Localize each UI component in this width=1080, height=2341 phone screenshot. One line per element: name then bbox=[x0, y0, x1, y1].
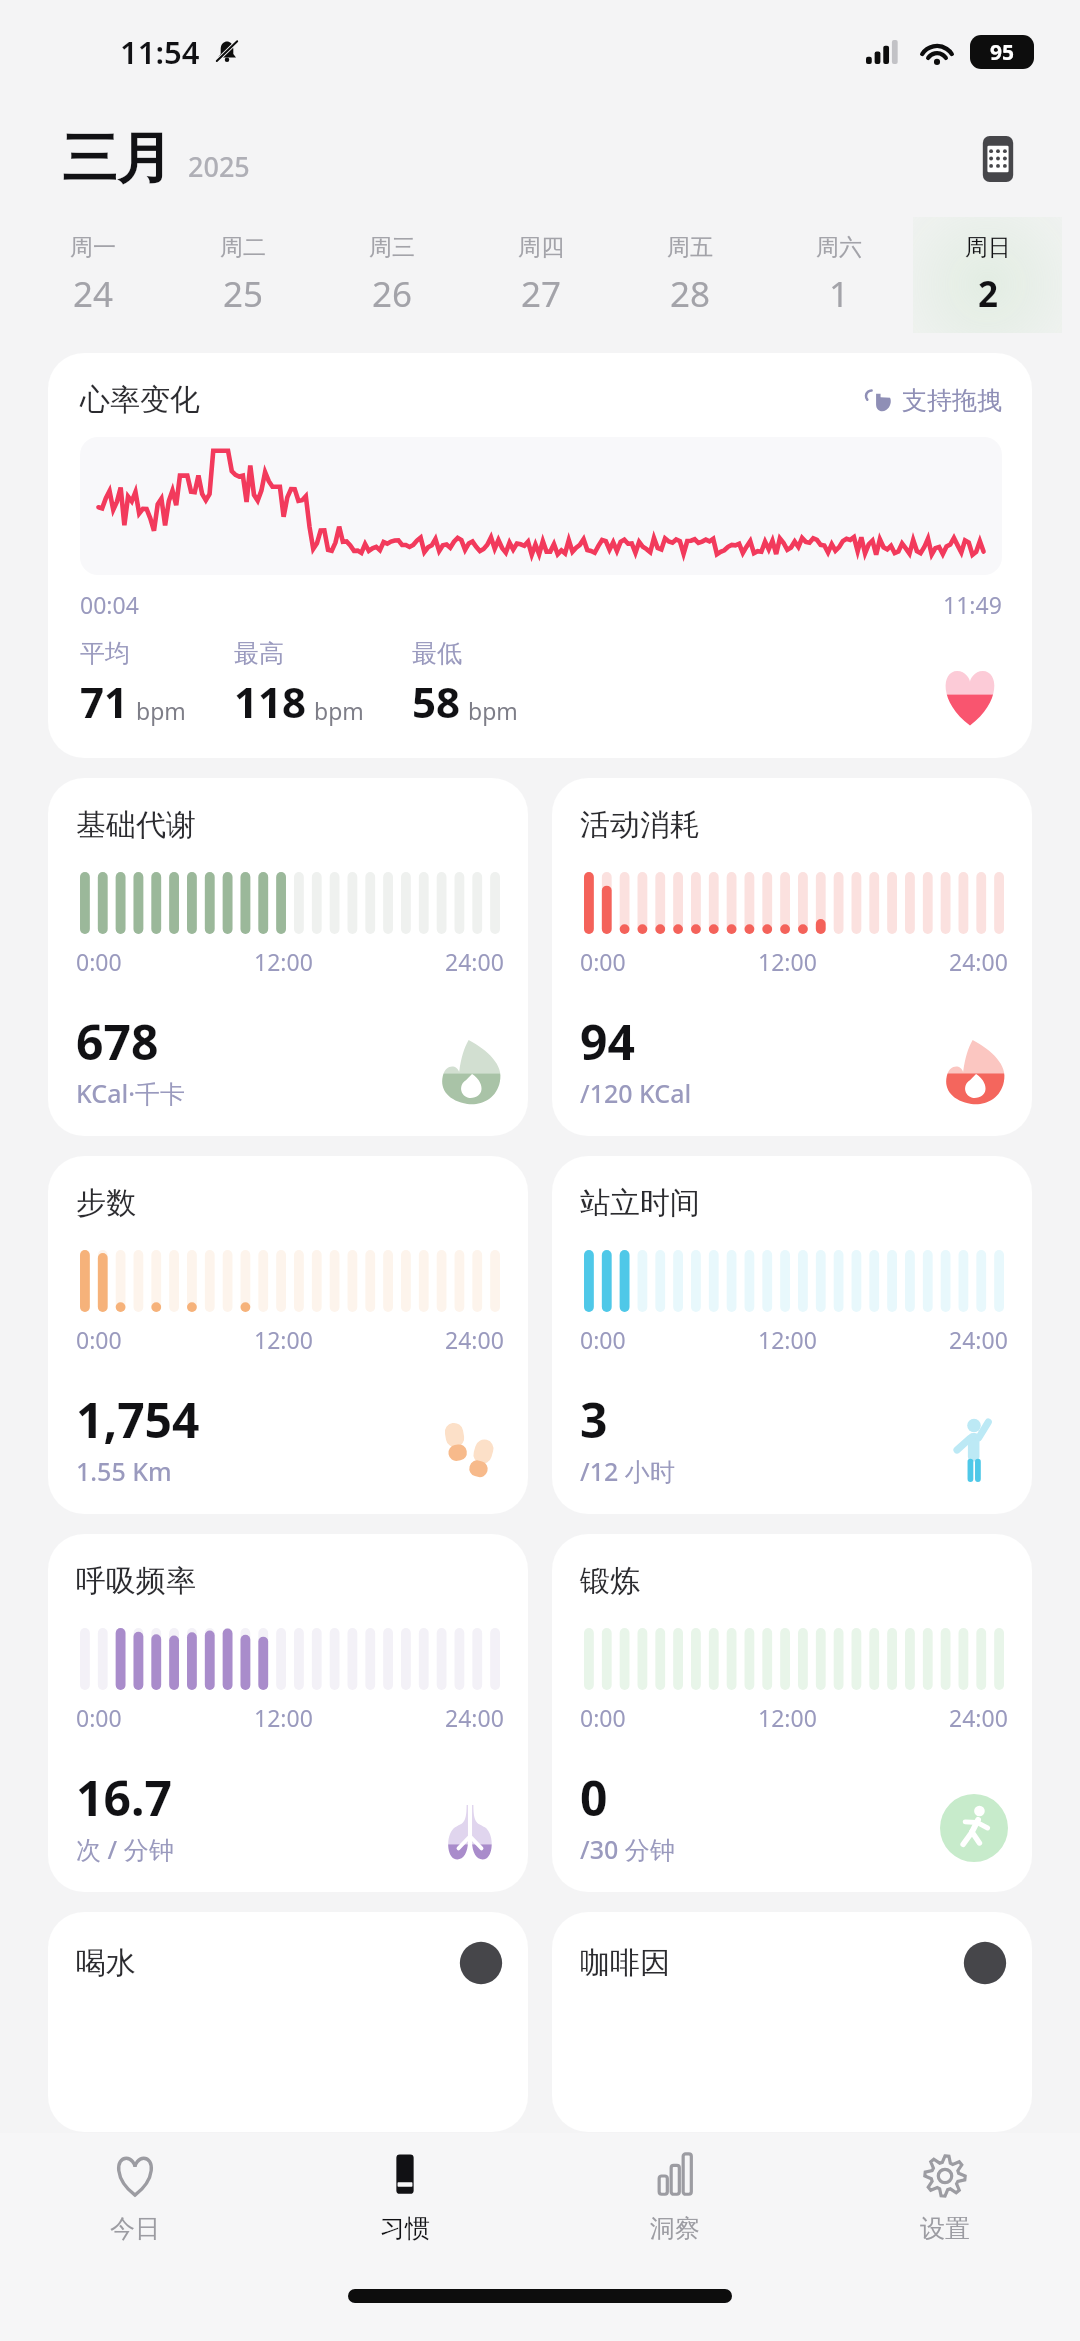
staticText: 12:00 bbox=[758, 946, 817, 977]
staticText: 1 bbox=[829, 270, 850, 318]
staticText: 12:00 bbox=[758, 1702, 817, 1733]
staticText: 周日 bbox=[965, 233, 1011, 262]
button[interactable]: 周六 bbox=[764, 217, 913, 333]
staticText: 11:54 bbox=[120, 31, 200, 73]
staticText: 平均 bbox=[80, 638, 130, 669]
button[interactable]: 喝水 bbox=[48, 1912, 528, 2132]
staticText: 12:00 bbox=[254, 1324, 313, 1355]
staticText: 24 bbox=[73, 270, 114, 318]
button[interactable]: 习惯 bbox=[270, 2149, 540, 2281]
staticText: 24:00 bbox=[445, 946, 504, 977]
staticText: 周二 bbox=[220, 233, 266, 262]
staticText: bpm bbox=[468, 695, 518, 726]
staticText: 0:00 bbox=[580, 1702, 626, 1733]
staticText: 58 bbox=[412, 673, 461, 730]
button[interactable]: 周三 bbox=[317, 217, 466, 333]
staticText: 0:00 bbox=[580, 946, 626, 977]
staticText: 1,754 bbox=[76, 1387, 200, 1452]
button[interactable]: 基础代谢 bbox=[48, 778, 528, 1136]
staticText: 周三 bbox=[369, 233, 415, 262]
staticText: 26 bbox=[372, 270, 413, 318]
staticText: 00:04 bbox=[80, 589, 139, 620]
staticText: 24:00 bbox=[949, 946, 1008, 977]
staticText: 12:00 bbox=[254, 1702, 313, 1733]
staticText: 0:00 bbox=[580, 1324, 626, 1355]
staticText: 三月 bbox=[62, 124, 172, 193]
staticText: 周一 bbox=[70, 233, 116, 262]
button[interactable]: 心率变化 bbox=[48, 353, 1032, 758]
staticText: 设置 bbox=[920, 2213, 970, 2244]
staticText: 站立时间 bbox=[580, 1184, 700, 1222]
button[interactable]: 锻炼 bbox=[552, 1534, 1032, 1892]
staticText: 2 bbox=[978, 270, 999, 318]
staticText: 周五 bbox=[667, 233, 713, 262]
staticText: 最低 bbox=[412, 638, 462, 669]
button[interactable]: 咖啡因 bbox=[552, 1912, 1032, 2132]
staticText: 24:00 bbox=[949, 1702, 1008, 1733]
staticText: 周四 bbox=[518, 233, 564, 262]
button[interactable]: 步数 bbox=[48, 1156, 528, 1514]
staticText: /12 小时 bbox=[580, 1454, 675, 1488]
staticText: /120 KCal bbox=[580, 1076, 692, 1110]
button[interactable]: 周日 bbox=[913, 217, 1062, 333]
staticText: 洞察 bbox=[650, 2213, 700, 2244]
staticText: 24:00 bbox=[445, 1702, 504, 1733]
staticText: 0:00 bbox=[76, 1702, 122, 1733]
staticText: bpm bbox=[314, 695, 364, 726]
staticText: 周六 bbox=[816, 233, 862, 262]
staticText: 27 bbox=[521, 270, 562, 318]
staticText: 3 bbox=[580, 1387, 608, 1452]
staticText: 1.55 Km bbox=[76, 1454, 172, 1488]
staticText: 0 bbox=[580, 1765, 608, 1830]
staticText: 今日 bbox=[110, 2213, 160, 2244]
button[interactable]: 站立时间 bbox=[552, 1156, 1032, 1514]
staticText: 24:00 bbox=[445, 1324, 504, 1355]
staticText: 24:00 bbox=[949, 1324, 1008, 1355]
staticText: 习惯 bbox=[380, 2213, 430, 2244]
staticText: 118 bbox=[234, 673, 307, 730]
button[interactable]: 周二 bbox=[168, 217, 317, 333]
staticText: 活动消耗 bbox=[580, 806, 700, 844]
staticText: 支持拖拽 bbox=[902, 385, 1002, 416]
button[interactable]: 洞察 bbox=[540, 2149, 810, 2281]
button[interactable]: 周四 bbox=[466, 217, 615, 333]
staticText: 基础代谢 bbox=[76, 806, 196, 844]
staticText: 12:00 bbox=[254, 946, 313, 977]
staticText: 94 bbox=[580, 1009, 635, 1074]
staticText: 步数 bbox=[76, 1184, 136, 1222]
staticText: KCal·千卡 bbox=[76, 1076, 186, 1110]
button[interactable]: 周五 bbox=[615, 217, 764, 333]
button[interactable]: 活动消耗 bbox=[552, 778, 1032, 1136]
staticText: 16.7 bbox=[76, 1765, 172, 1830]
staticText: 2025 bbox=[188, 148, 250, 185]
staticText: 25 bbox=[223, 270, 264, 318]
staticText: 0:00 bbox=[76, 1324, 122, 1355]
staticText: bpm bbox=[136, 695, 186, 726]
button[interactable]: 设置 bbox=[810, 2149, 1080, 2281]
staticText: 678 bbox=[76, 1009, 159, 1074]
staticText: 锻炼 bbox=[580, 1562, 640, 1600]
staticText: 次 / 分钟 bbox=[76, 1832, 174, 1866]
staticText: 28 bbox=[670, 270, 711, 318]
staticText: 95 bbox=[990, 38, 1015, 67]
staticText: 心率变化 bbox=[80, 381, 200, 419]
staticText: 11:49 bbox=[943, 589, 1002, 620]
button[interactable]: 周一 bbox=[18, 217, 168, 333]
staticText: 喝水 bbox=[76, 1944, 136, 1982]
staticText: 呼吸频率 bbox=[76, 1562, 196, 1600]
button[interactable]: Calendar bbox=[972, 133, 1024, 185]
staticText: 71 bbox=[80, 673, 129, 730]
staticText: 0:00 bbox=[76, 946, 122, 977]
staticText: 12:00 bbox=[758, 1324, 817, 1355]
staticText: /30 分钟 bbox=[580, 1832, 675, 1866]
button[interactable]: 今日 bbox=[0, 2149, 270, 2281]
staticText: 最高 bbox=[234, 638, 284, 669]
staticText: 咖啡因 bbox=[580, 1944, 670, 1982]
button[interactable]: 呼吸频率 bbox=[48, 1534, 528, 1892]
